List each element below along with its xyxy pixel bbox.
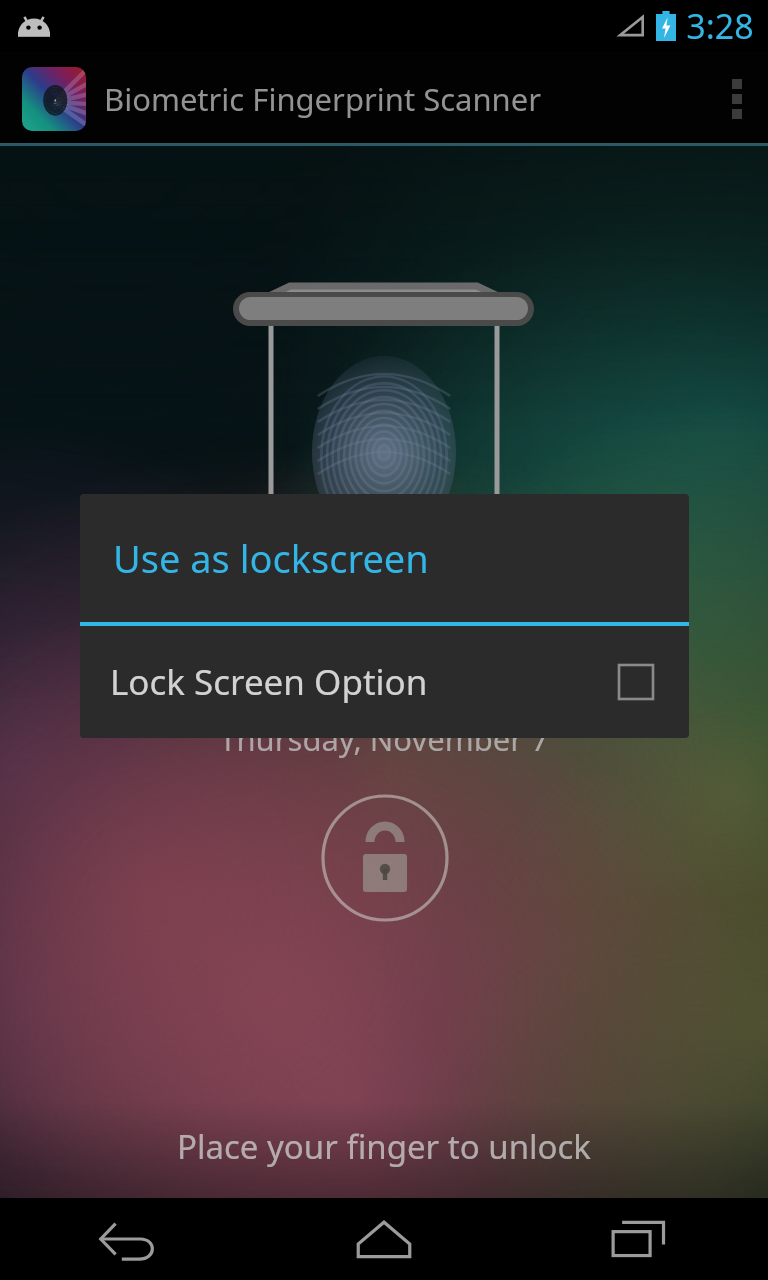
staticText: 3:28	[686, 3, 754, 49]
button[interactable]: Lock Screen Option	[80, 626, 689, 738]
staticText: Place your finger to unlock	[177, 1124, 591, 1169]
button[interactable]: Recent apps	[512, 1198, 768, 1280]
staticText: Use as lockscreen	[113, 532, 429, 584]
button[interactable]: Use as lockscreen	[80, 494, 689, 622]
staticText: Thursday, November 7	[219, 718, 549, 760]
button[interactable]: More options	[706, 52, 768, 146]
staticText: Biometric Fingerprint Scanner	[104, 78, 542, 120]
button[interactable]: Home	[256, 1198, 512, 1280]
staticText: Lock Screen Option	[110, 658, 619, 706]
button[interactable]: Back	[0, 1198, 256, 1280]
